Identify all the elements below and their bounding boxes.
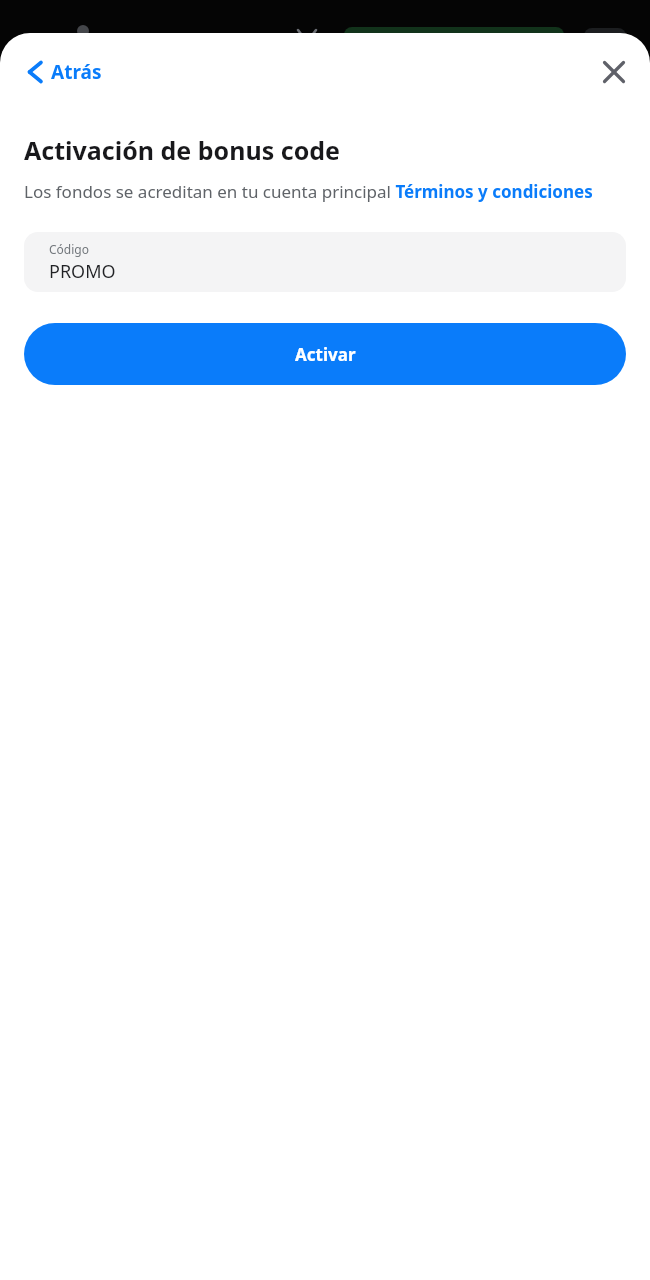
- button[interactable]: Código: [24, 232, 626, 292]
- staticText: Activación de bonus code: [24, 133, 340, 167]
- staticText: PROMO: [49, 259, 116, 284]
- staticText: Atrás: [51, 59, 102, 85]
- button[interactable]: Activar: [24, 323, 626, 385]
- staticText: Código: [49, 241, 89, 257]
- staticText: Activar: [295, 343, 356, 366]
- button[interactable]: Atrás: [24, 53, 106, 91]
- button[interactable]: Cerrar: [592, 50, 636, 94]
- button[interactable]: Los fondos se acreditan en tu cuenta pri…: [24, 180, 593, 203]
